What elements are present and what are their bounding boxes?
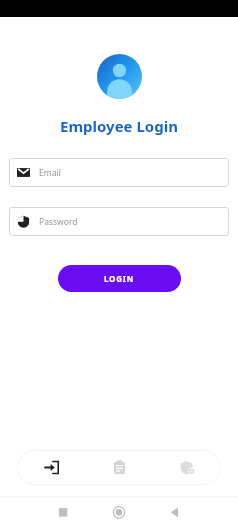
staticText: Email: [39, 167, 61, 179]
button[interactable]: Login: [17, 450, 85, 485]
staticText: LOGIN: [104, 273, 135, 284]
button[interactable]: LOGIN: [58, 265, 181, 292]
staticText: Password: [39, 216, 78, 228]
staticText: Employee Login: [60, 116, 178, 136]
button[interactable]: Password input field: [9, 207, 229, 236]
button[interactable]: Tasks: [85, 450, 153, 485]
button[interactable]: Email input field: [9, 158, 229, 187]
button[interactable]: Admin: [153, 450, 221, 485]
